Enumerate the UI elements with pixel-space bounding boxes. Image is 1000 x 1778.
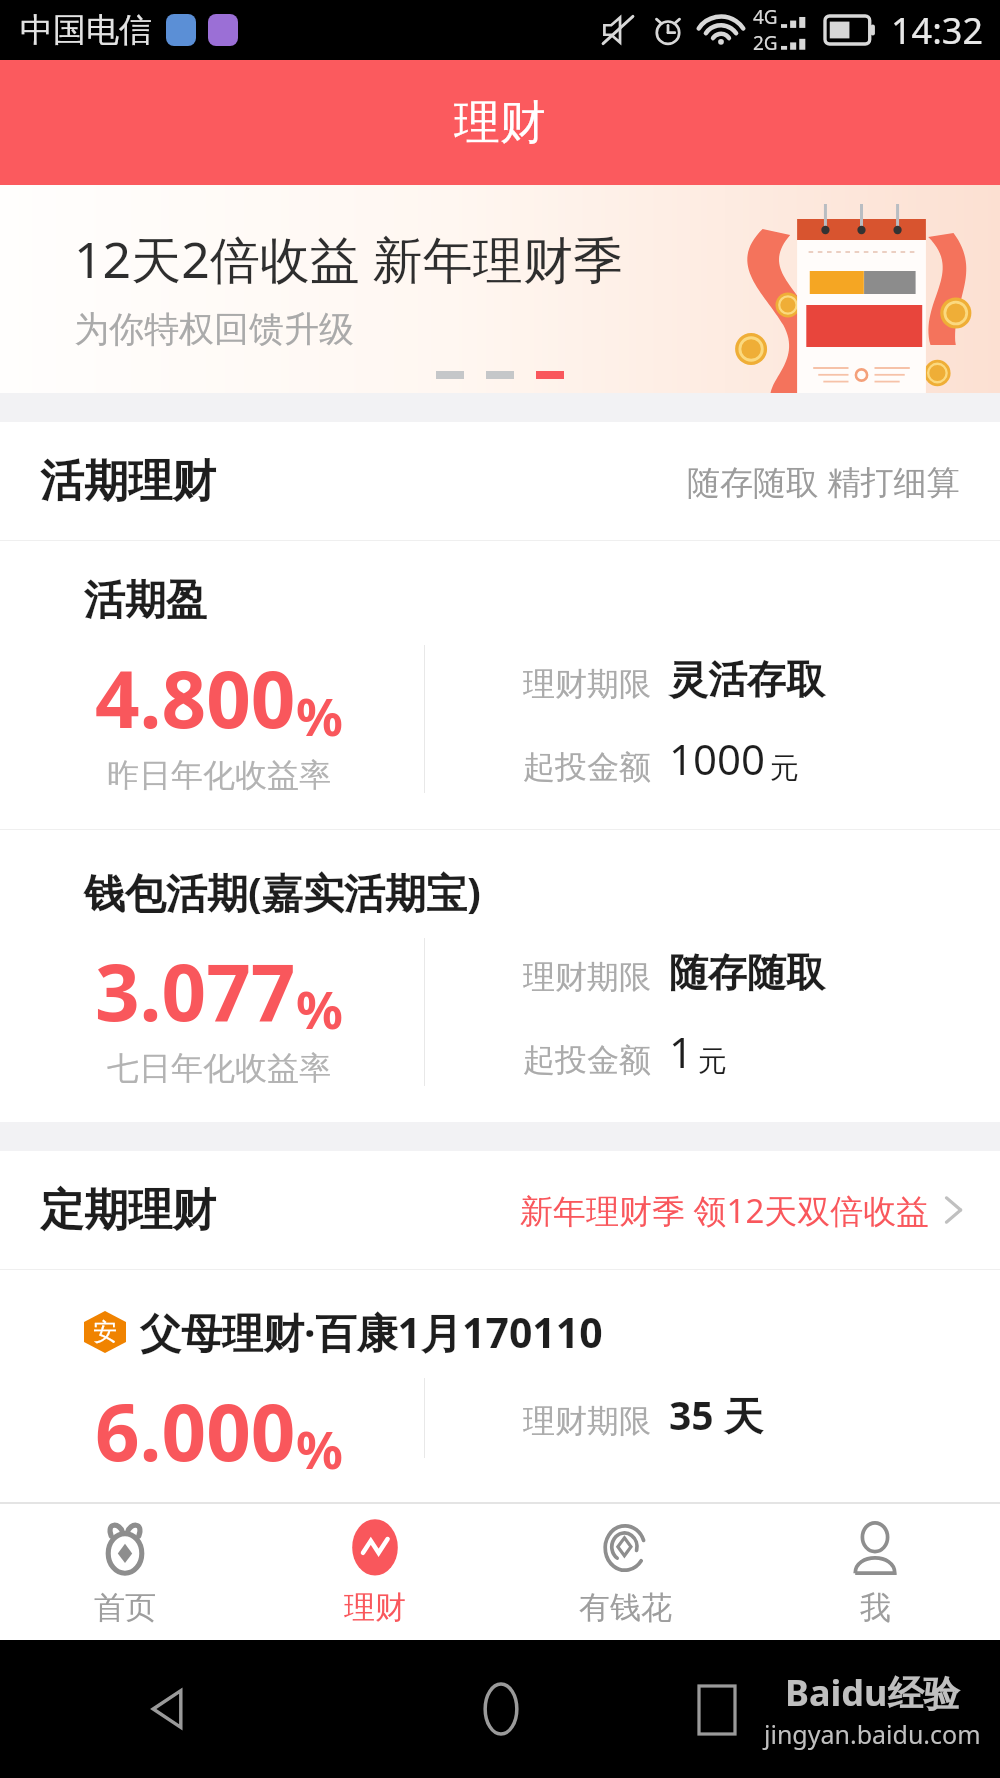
- staticText: 我: [860, 1588, 891, 1627]
- staticText: 理财期限: [523, 957, 651, 997]
- staticText: Baidu经验: [785, 1668, 960, 1717]
- staticText: 首页: [94, 1588, 156, 1627]
- staticText: 起投金额: [523, 1040, 651, 1080]
- staticText: 4.800: [95, 645, 296, 751]
- staticText: 元: [698, 1043, 727, 1080]
- staticText: 随存随取 精打细算: [687, 459, 960, 504]
- button[interactable]: 有钱花: [500, 1504, 750, 1640]
- button[interactable]: 理财: [250, 1504, 500, 1640]
- button[interactable]: 活期盈: [0, 541, 1000, 829]
- staticText: 为你特权回馈升级: [74, 307, 354, 351]
- staticText: jingyan.baidu.com: [764, 1717, 981, 1751]
- staticText: 随存随取: [669, 948, 825, 997]
- staticText: 理财期限: [523, 1401, 651, 1441]
- staticText: 灵活存取: [669, 655, 825, 704]
- staticText: 4G: [753, 4, 778, 30]
- staticText: 理财期限: [523, 664, 651, 704]
- staticText: 七日年化收益率: [107, 1048, 331, 1088]
- button[interactable]: Back: [131, 1673, 203, 1745]
- staticText: 35 天: [669, 1388, 763, 1441]
- button[interactable]: Home: [465, 1673, 537, 1745]
- staticText: 中国电信: [20, 9, 152, 51]
- staticText: 定期理财: [40, 1183, 216, 1238]
- button[interactable]: 首页: [0, 1504, 250, 1640]
- staticText: 理财: [454, 94, 546, 152]
- staticText: 1: [669, 1023, 694, 1080]
- button[interactable]: 活期理财: [0, 422, 1000, 540]
- staticText: 钱包活期(嘉实活期宝): [84, 864, 481, 920]
- button[interactable]: 我: [750, 1504, 1000, 1640]
- staticText: 14:32: [891, 6, 984, 55]
- staticText: 理财: [344, 1588, 406, 1627]
- button[interactable]: 12天2倍收益 新年理财季: [0, 185, 1000, 393]
- staticText: 有钱花: [579, 1588, 672, 1627]
- staticText: 父母理财·百康1月170110: [140, 1304, 603, 1360]
- button[interactable]: Recents: [686, 1679, 748, 1741]
- staticText: 3.077: [95, 938, 296, 1044]
- staticText: 活期盈: [84, 575, 207, 627]
- staticText: 元: [770, 750, 799, 787]
- staticText: 12天2倍收益 新年理财季: [74, 225, 623, 293]
- staticText: 2G: [753, 30, 778, 56]
- staticText: 新年理财季 领12天双倍收益: [520, 1188, 930, 1233]
- staticText: 起投金额: [523, 747, 651, 787]
- button[interactable]: 钱包活期(嘉实活期宝): [0, 830, 1000, 1122]
- staticText: 6.000: [95, 1378, 296, 1484]
- staticText: 昨日年化收益率: [107, 755, 331, 795]
- staticText: 1000: [669, 730, 766, 787]
- staticText: %: [296, 680, 343, 751]
- button[interactable]: 定期理财: [0, 1151, 1000, 1269]
- staticText: 活期理财: [40, 454, 216, 509]
- button[interactable]: 安: [0, 1270, 1000, 1484]
- button[interactable]: 理财: [0, 60, 1000, 185]
- staticText: %: [296, 1413, 343, 1484]
- staticText: 安: [93, 1317, 117, 1347]
- staticText: %: [296, 973, 343, 1044]
